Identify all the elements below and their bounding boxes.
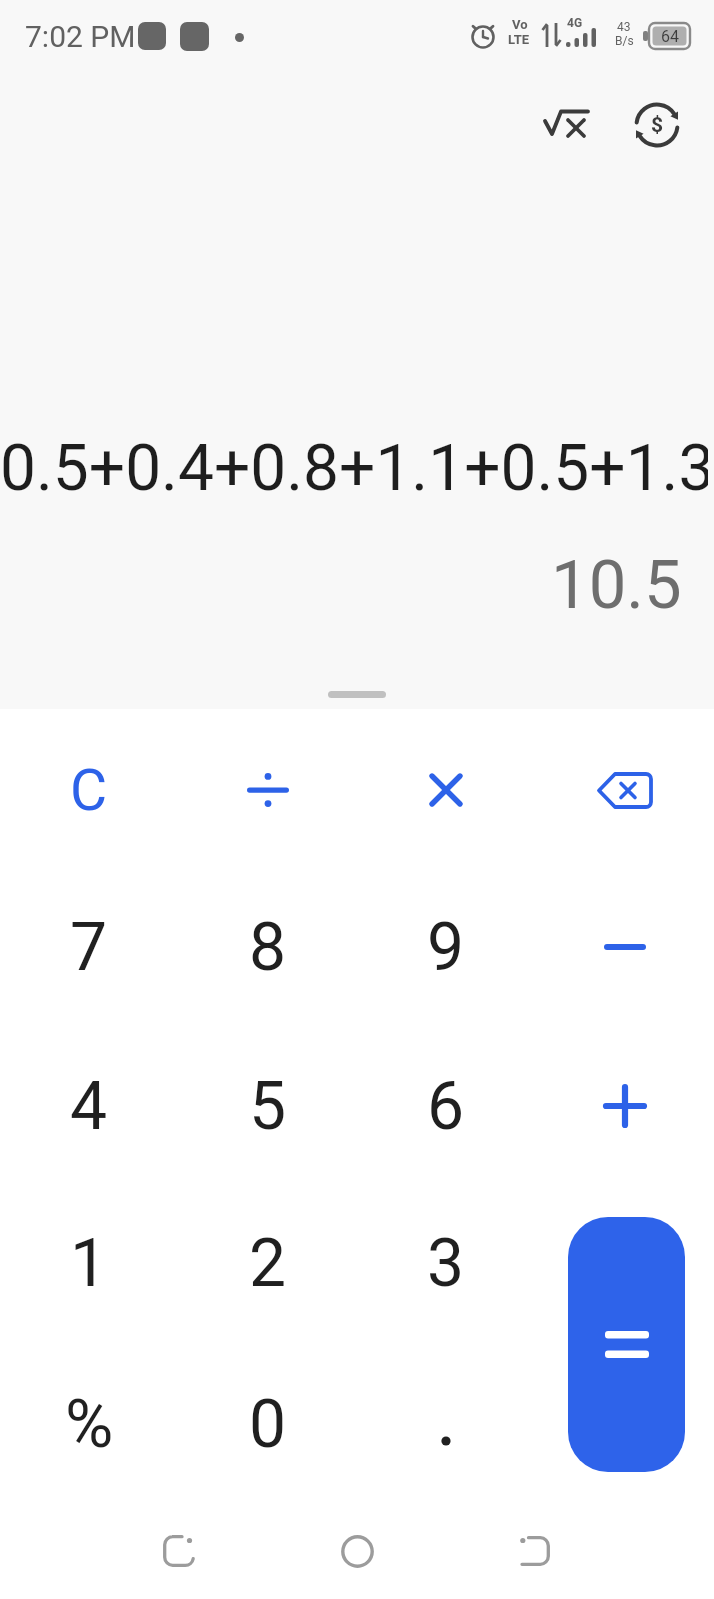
staticText: 9 [427, 909, 465, 986]
button[interactable]: 2 [183, 1188, 353, 1338]
button[interactable] [555, 725, 695, 855]
button[interactable]: 5 [183, 1031, 353, 1181]
button[interactable] [376, 725, 516, 855]
staticText: 7:02 PM [25, 19, 136, 54]
staticText: 2 [249, 1225, 287, 1302]
button[interactable]: C [4, 715, 174, 865]
button[interactable]: 9 [361, 872, 531, 1022]
button[interactable] [144, 1516, 214, 1586]
button[interactable] [555, 882, 695, 1012]
button[interactable]: 6 [361, 1031, 531, 1181]
button[interactable] [376, 1376, 516, 1506]
staticText: 0 [249, 1386, 287, 1463]
button[interactable] [198, 725, 338, 855]
staticText: 3 [427, 1225, 465, 1302]
staticText: LTE [508, 32, 530, 47]
button[interactable]: 1 [4, 1188, 174, 1338]
button[interactable] [500, 1516, 570, 1586]
button[interactable] [555, 1041, 695, 1171]
staticText: 8 [249, 909, 287, 986]
staticText: 1 [70, 1225, 108, 1302]
staticText: 43 [617, 20, 631, 34]
staticText: 5 [249, 1068, 287, 1145]
staticText: B/s [615, 34, 634, 48]
button[interactable]: % [4, 1349, 174, 1499]
staticText: 4G [567, 16, 583, 30]
button[interactable]: 8 [183, 872, 353, 1022]
staticText: 0.5+0.4+0.8+1.1+0.5+1.3 [0, 431, 708, 506]
staticText: Vo [512, 17, 528, 31]
button[interactable] [322, 1516, 392, 1586]
button[interactable] [568, 1217, 685, 1472]
staticText: 7 [70, 909, 108, 986]
staticText: 4 [70, 1068, 108, 1145]
staticText: 6 [427, 1068, 465, 1145]
button[interactable]: 0 [183, 1349, 353, 1499]
button[interactable] [536, 95, 600, 155]
button[interactable]: 7 [4, 872, 174, 1022]
staticText: $ [651, 113, 664, 138]
staticText: 64 [661, 27, 679, 46]
staticText: 10.5 [551, 546, 682, 625]
button[interactable]: 3 [361, 1188, 531, 1338]
staticText: % [65, 1386, 114, 1463]
button[interactable]: 4 [4, 1031, 174, 1181]
button[interactable]: $ [627, 95, 687, 155]
staticText: C [70, 757, 108, 824]
